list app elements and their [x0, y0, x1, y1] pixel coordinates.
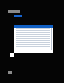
button[interactable]: Data table	[14, 25, 53, 53]
